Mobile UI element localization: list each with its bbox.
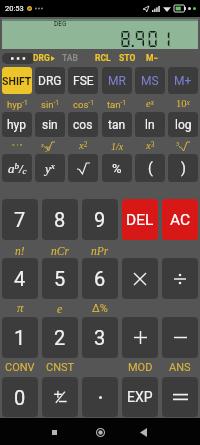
button[interactable]: DRG bbox=[35, 67, 65, 94]
staticText: x3 bbox=[146, 140, 155, 152]
staticText: EXP bbox=[127, 389, 153, 405]
staticText: RCL bbox=[95, 53, 111, 63]
button[interactable]: 9 bbox=[82, 199, 118, 240]
staticText: CNST bbox=[46, 361, 75, 374]
staticText: ANS bbox=[169, 361, 191, 374]
button[interactable]: hyp bbox=[2, 112, 32, 137]
button[interactable]: 6 bbox=[82, 258, 118, 299]
staticText: sin-1 bbox=[41, 99, 60, 110]
button[interactable]: yx bbox=[35, 154, 65, 182]
staticText: 0 bbox=[14, 386, 26, 409]
staticText: ln bbox=[145, 118, 155, 132]
button[interactable]: MR bbox=[102, 67, 132, 94]
staticText: 7 bbox=[14, 208, 26, 231]
staticText: nCr bbox=[51, 245, 69, 258]
button[interactable]: Home bbox=[89, 421, 111, 443]
staticText: MR bbox=[108, 74, 126, 88]
staticText: 8.901 bbox=[119, 28, 172, 49]
button[interactable]: TAB bbox=[55, 49, 85, 67]
staticText: log bbox=[175, 118, 192, 132]
staticText: SHIFT bbox=[2, 75, 32, 87]
staticText: hyp-1 bbox=[7, 99, 28, 110]
button[interactable]: 4 bbox=[2, 258, 38, 299]
staticText: 1/x bbox=[111, 141, 124, 152]
staticText: ° ′ ″ bbox=[12, 142, 23, 151]
staticText: M+ bbox=[174, 74, 192, 88]
button[interactable]: AC bbox=[162, 199, 198, 240]
staticText: hyp bbox=[7, 118, 27, 132]
button[interactable]: 8 bbox=[42, 199, 78, 240]
staticText: MOD bbox=[128, 361, 153, 374]
button[interactable]: ) bbox=[168, 154, 198, 182]
button[interactable]: square root bbox=[68, 154, 98, 182]
button[interactable]: 0 bbox=[2, 377, 38, 417]
staticText: e bbox=[57, 302, 63, 315]
staticText: tan-1 bbox=[107, 99, 127, 110]
staticText: DEG bbox=[54, 20, 67, 28]
staticText: n! bbox=[15, 245, 25, 258]
button[interactable]: DRG bbox=[29, 49, 59, 67]
button[interactable]: 5 bbox=[42, 258, 78, 299]
button[interactable]: % bbox=[102, 154, 132, 182]
staticText: STO bbox=[119, 53, 136, 63]
button[interactable]: minus bbox=[162, 317, 198, 358]
button[interactable]: Back bbox=[132, 421, 154, 443]
staticText: 5 bbox=[54, 267, 66, 290]
staticText: ab/c bbox=[8, 161, 27, 176]
staticText: 2 bbox=[54, 326, 66, 349]
staticText: ex bbox=[146, 98, 154, 110]
staticText: nPr bbox=[91, 245, 109, 258]
button[interactable]: a b over c bbox=[2, 154, 32, 182]
button[interactable]: plus bbox=[122, 317, 158, 358]
staticText: sin bbox=[42, 118, 58, 132]
button[interactable]: cos bbox=[68, 112, 98, 137]
button[interactable]: 7 bbox=[2, 199, 38, 240]
staticText: 3 bbox=[176, 141, 179, 148]
staticText: TAB bbox=[62, 53, 78, 63]
button[interactable]: decimal point bbox=[82, 377, 118, 417]
button[interactable]: M+ bbox=[168, 67, 198, 94]
button[interactable]: SHIFT bbox=[2, 67, 32, 94]
button[interactable]: RCL bbox=[88, 49, 118, 67]
staticText: DEL bbox=[126, 211, 154, 229]
button[interactable]: MS bbox=[135, 67, 165, 94]
button[interactable]: More options bbox=[2, 53, 35, 64]
staticText: CONV bbox=[5, 361, 35, 374]
button[interactable]: 1 bbox=[2, 317, 38, 358]
staticText: FSE bbox=[73, 74, 94, 88]
button[interactable]: log bbox=[168, 112, 198, 137]
staticText: 4 bbox=[14, 267, 26, 290]
button[interactable]: tan bbox=[102, 112, 132, 137]
button[interactable]: multiply bbox=[122, 258, 158, 299]
staticText: π bbox=[17, 300, 24, 314]
button[interactable]: equals bbox=[162, 377, 198, 417]
staticText: 8 bbox=[54, 208, 66, 231]
staticText: 6 bbox=[94, 267, 106, 290]
button[interactable]: divide bbox=[162, 258, 198, 299]
button[interactable]: EXP bbox=[122, 377, 158, 417]
staticText: MS bbox=[141, 74, 159, 88]
staticText: x2 bbox=[79, 140, 88, 152]
staticText: 9 bbox=[94, 208, 106, 231]
button[interactable]: STO bbox=[112, 49, 142, 67]
button[interactable]: FSE bbox=[68, 67, 98, 94]
staticText: Δ% bbox=[92, 302, 108, 315]
button[interactable]: DEL bbox=[122, 199, 158, 240]
staticText: y bbox=[46, 143, 50, 152]
staticText: M− bbox=[146, 53, 159, 63]
staticText: cos-1 bbox=[73, 99, 94, 110]
button[interactable]: ( bbox=[135, 154, 165, 182]
staticText: DRG bbox=[33, 53, 50, 63]
staticText: cos bbox=[73, 118, 93, 132]
staticText: x bbox=[41, 141, 44, 148]
button[interactable]: 3 bbox=[82, 317, 118, 358]
button[interactable]: ln bbox=[135, 112, 165, 137]
button[interactable]: 2 bbox=[42, 317, 78, 358]
button[interactable]: M− bbox=[137, 49, 167, 67]
button[interactable]: plus minus bbox=[42, 377, 78, 417]
staticText: yx bbox=[45, 161, 55, 175]
button[interactable]: Recent apps bbox=[43, 421, 65, 443]
staticText: 3 bbox=[94, 326, 106, 349]
button[interactable]: sin bbox=[35, 112, 65, 137]
staticText: 1 bbox=[14, 326, 26, 349]
